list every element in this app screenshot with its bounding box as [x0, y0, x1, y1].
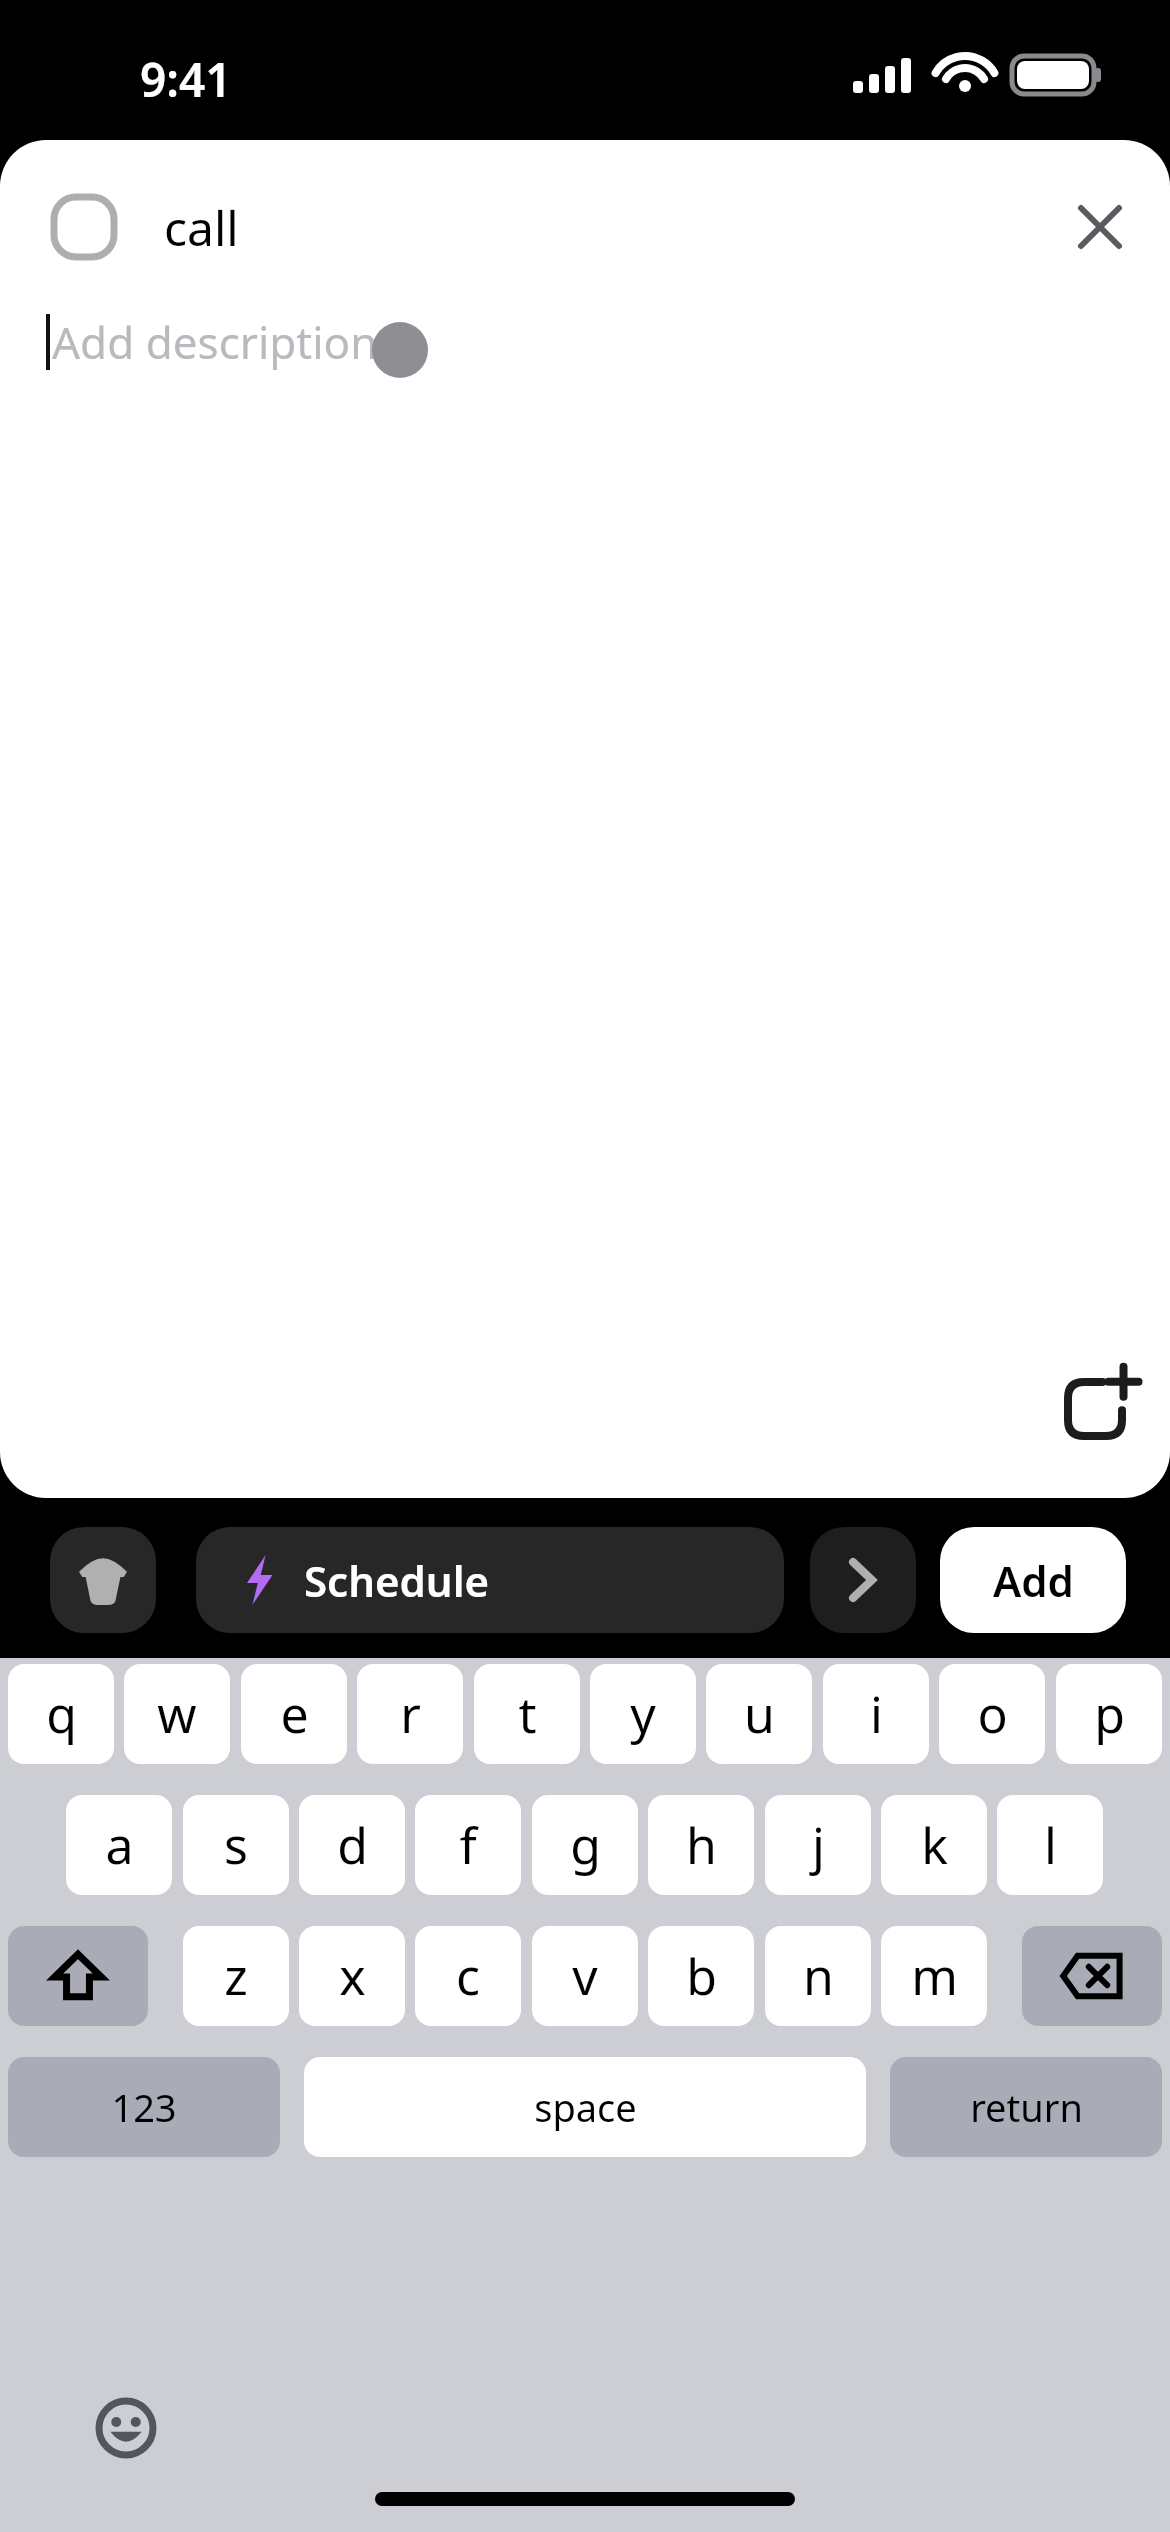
button[interactable]: Add — [940, 1527, 1126, 1633]
button[interactable]: c — [415, 1926, 521, 2026]
staticText: 9:41 — [140, 48, 232, 111]
button[interactable]: Delete — [50, 1527, 156, 1633]
staticText: r — [400, 1680, 421, 1748]
staticText: Add — [993, 1552, 1074, 1609]
staticText: x — [339, 1942, 366, 2010]
button[interactable]: Schedule — [196, 1527, 784, 1633]
staticText: q — [46, 1680, 77, 1748]
staticText: j — [812, 1811, 825, 1879]
button[interactable]: v — [532, 1926, 638, 2026]
button[interactable]: Backspace — [1022, 1926, 1162, 2026]
button[interactable]: Close — [1052, 182, 1148, 272]
button[interactable]: w — [124, 1664, 230, 1764]
staticText: g — [570, 1811, 601, 1879]
button[interactable]: f — [415, 1795, 521, 1895]
button[interactable]: b — [648, 1926, 754, 2026]
staticText: f — [459, 1811, 477, 1879]
button[interactable]: m — [881, 1926, 987, 2026]
button[interactable]: 123 — [8, 2057, 280, 2157]
staticText: Schedule — [304, 1552, 490, 1609]
button[interactable]: Add subtask — [1040, 1354, 1150, 1464]
staticText: s — [224, 1811, 248, 1879]
button[interactable] — [50, 193, 118, 261]
button[interactable]: d — [299, 1795, 405, 1895]
button[interactable]: o — [939, 1664, 1045, 1764]
staticText: return — [970, 2081, 1083, 2133]
staticText: e — [280, 1680, 309, 1748]
button[interactable]: n — [765, 1926, 871, 2026]
staticText: k — [921, 1811, 948, 1879]
button[interactable]: y — [590, 1664, 696, 1764]
staticText: o — [977, 1680, 1008, 1748]
button[interactable]: u — [706, 1664, 812, 1764]
staticText: n — [803, 1942, 834, 2010]
staticText: space — [534, 2081, 637, 2133]
staticText: Add description — [52, 312, 378, 372]
button[interactable]: p — [1056, 1664, 1162, 1764]
button[interactable]: x — [299, 1926, 405, 2026]
staticText: d — [337, 1811, 368, 1879]
staticText: c — [456, 1942, 480, 2010]
button[interactable]: a — [66, 1795, 172, 1895]
staticText: m — [911, 1942, 958, 2010]
button[interactable]: return — [890, 2057, 1162, 2157]
button[interactable]: Emoji — [78, 2380, 174, 2476]
staticText: t — [518, 1680, 537, 1748]
button[interactable]: More options — [810, 1527, 916, 1633]
staticText: p — [1094, 1680, 1125, 1748]
button[interactable]: e — [241, 1664, 347, 1764]
staticText: l — [1044, 1811, 1057, 1879]
button[interactable]: t — [474, 1664, 580, 1764]
staticText: v — [572, 1942, 598, 2010]
staticText: w — [157, 1680, 197, 1748]
staticText: a — [105, 1811, 134, 1879]
button[interactable]: i — [823, 1664, 929, 1764]
button[interactable]: h — [648, 1795, 754, 1895]
button[interactable]: Add description — [0, 300, 1170, 386]
staticText: z — [224, 1942, 248, 2010]
staticText: i — [870, 1680, 883, 1748]
staticText: y — [630, 1680, 656, 1748]
button[interactable]: space — [304, 2057, 866, 2157]
button[interactable]: q — [8, 1664, 114, 1764]
button[interactable]: j — [765, 1795, 871, 1895]
button[interactable]: r — [357, 1664, 463, 1764]
button[interactable]: s — [183, 1795, 289, 1895]
button[interactable]: z — [183, 1926, 289, 2026]
button[interactable]: Shift — [8, 1926, 148, 2026]
staticText: b — [686, 1942, 717, 2010]
staticText: call — [164, 195, 239, 260]
staticText: 123 — [111, 2081, 177, 2133]
staticText: h — [686, 1811, 717, 1879]
staticText: u — [744, 1680, 775, 1748]
button[interactable]: l — [997, 1795, 1103, 1895]
button[interactable]: k — [881, 1795, 987, 1895]
button[interactable]: g — [532, 1795, 638, 1895]
